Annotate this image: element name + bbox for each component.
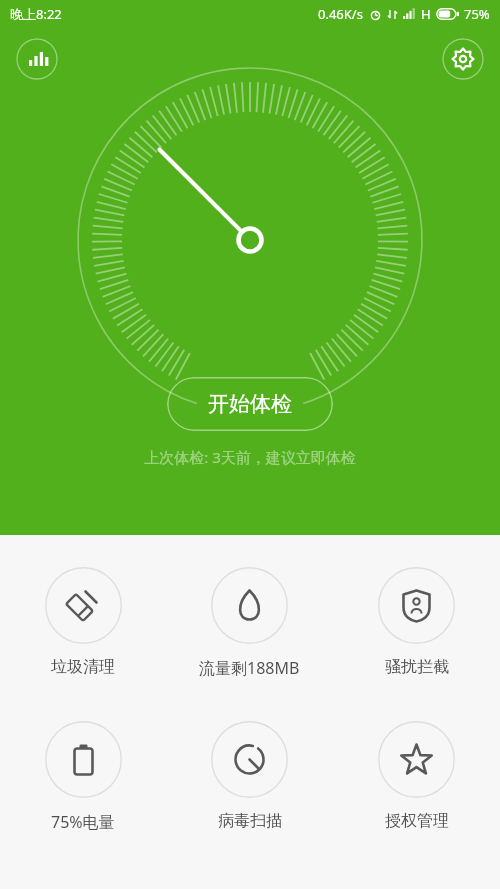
staticText: 75% — [464, 5, 490, 23]
staticText: 垃圾清理 — [51, 657, 115, 677]
staticText: 75%电量 — [51, 811, 115, 833]
staticText: 0.46K/s — [318, 5, 363, 23]
staticText: 开始体检 — [208, 391, 292, 417]
button[interactable]: 病毒扫描 — [166, 719, 333, 833]
staticText: 晚上8:22 — [10, 5, 62, 23]
staticText: 骚扰拦截 — [385, 657, 449, 677]
staticText: H — [421, 5, 431, 23]
button[interactable]: 75%电量 — [0, 719, 166, 835]
button[interactable]: 垃圾清理 — [0, 565, 166, 679]
staticText: 上次体检: 3天前，建议立即体检 — [144, 447, 356, 467]
button[interactable]: Statistics — [16, 38, 58, 80]
staticText: 病毒扫描 — [218, 811, 282, 831]
staticText: 授权管理 — [385, 811, 449, 831]
button[interactable]: Settings — [442, 38, 484, 80]
staticText: 流量剩188MB — [199, 657, 300, 679]
button[interactable]: 流量剩188MB — [166, 565, 333, 681]
button[interactable]: 授权管理 — [333, 719, 500, 833]
button[interactable]: 骚扰拦截 — [333, 565, 500, 679]
button[interactable]: 开始体检 — [167, 377, 333, 431]
